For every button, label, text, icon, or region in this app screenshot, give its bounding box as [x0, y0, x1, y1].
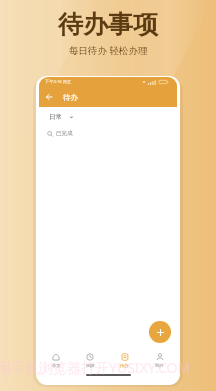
button[interactable]: 日常 — [49, 113, 74, 121]
staticText: 我的 — [155, 363, 164, 368]
staticText: 用手机浏览器打开YUSIXY.COM — [0, 358, 191, 377]
button[interactable]: 首页 — [39, 350, 73, 371]
staticText: 提醒 — [86, 363, 95, 368]
staticText: 日常 — [49, 113, 62, 121]
staticText: 待办事项 — [58, 9, 158, 40]
button[interactable]: 提醒 — [73, 350, 107, 371]
staticText: 首页 — [52, 363, 61, 368]
button[interactable]: 已完成 — [47, 130, 73, 137]
staticText: 待办 — [120, 363, 129, 368]
button[interactable]: 我的 — [142, 350, 177, 371]
button[interactable]: 待办 — [107, 350, 142, 371]
button[interactable]: Back — [43, 91, 55, 103]
staticText: 待办 — [63, 93, 78, 102]
staticText: 每日待办 轻松办理 — [69, 44, 148, 57]
staticText: 下午3:16 周五 — [45, 79, 72, 85]
button[interactable]: Add — [149, 321, 171, 343]
staticText: 已完成 — [56, 130, 73, 137]
